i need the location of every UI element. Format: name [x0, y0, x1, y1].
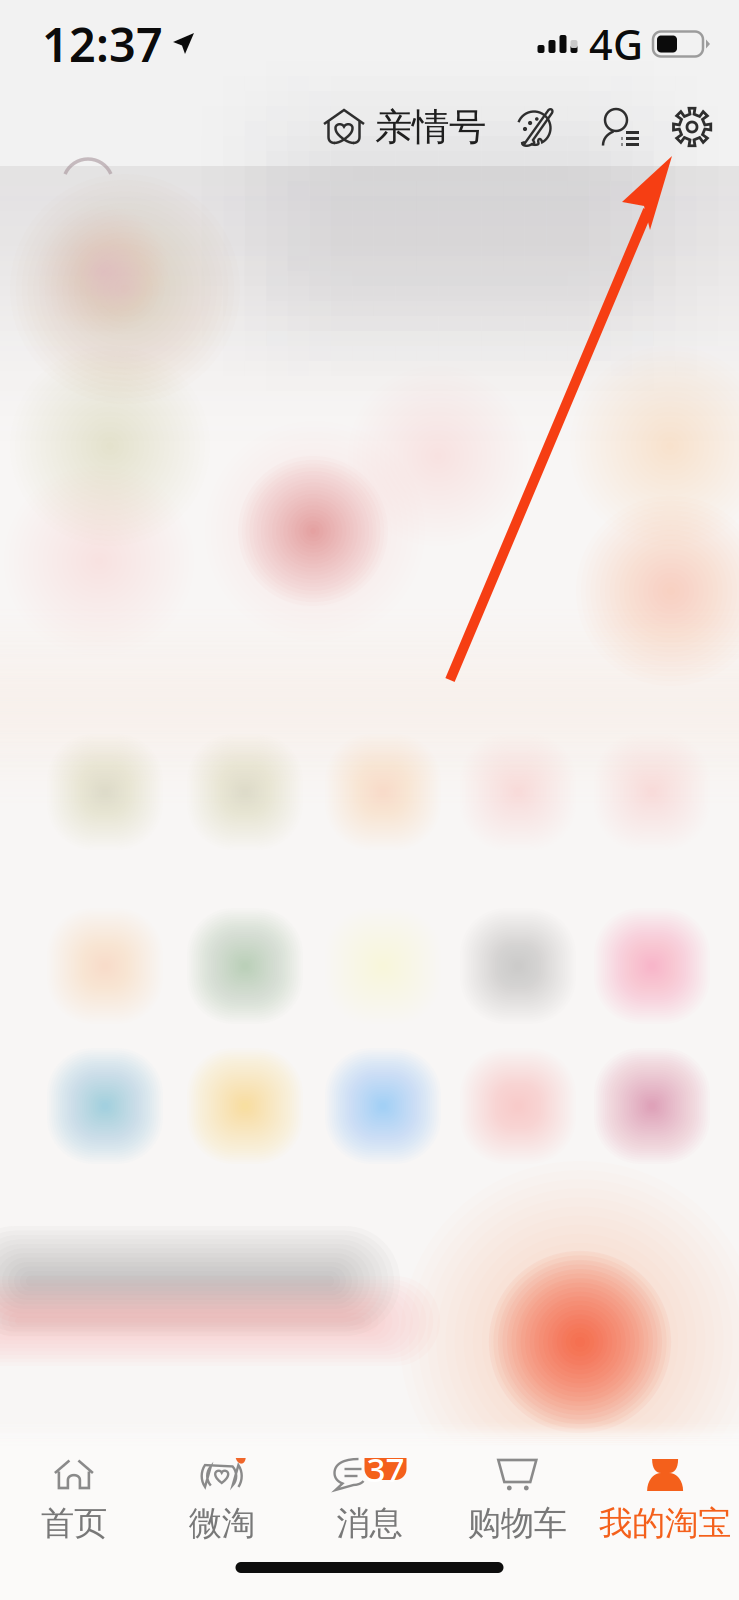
staticText: 我的淘宝	[599, 1503, 731, 1544]
button[interactable]: Settings	[671, 88, 713, 166]
staticText: 37	[366, 1447, 404, 1491]
staticText: 亲情号	[375, 104, 486, 150]
staticText: 微淘	[189, 1503, 255, 1544]
button[interactable]: 微淘	[148, 1445, 296, 1545]
button[interactable]: 购物车	[443, 1445, 591, 1545]
staticText: 12:37	[42, 13, 163, 75]
staticText: 首页	[41, 1503, 107, 1544]
button[interactable]: 37	[296, 1445, 443, 1545]
button[interactable]: Contacts	[602, 88, 640, 166]
staticText: 消息	[336, 1503, 402, 1544]
staticText: 4G	[589, 17, 643, 71]
button[interactable]: 我的淘宝	[591, 1445, 739, 1545]
button[interactable]: Theme	[515, 88, 559, 166]
button[interactable]: 亲情号	[321, 88, 488, 166]
button[interactable]: 首页	[0, 1445, 148, 1545]
staticText: 购物车	[468, 1503, 567, 1544]
